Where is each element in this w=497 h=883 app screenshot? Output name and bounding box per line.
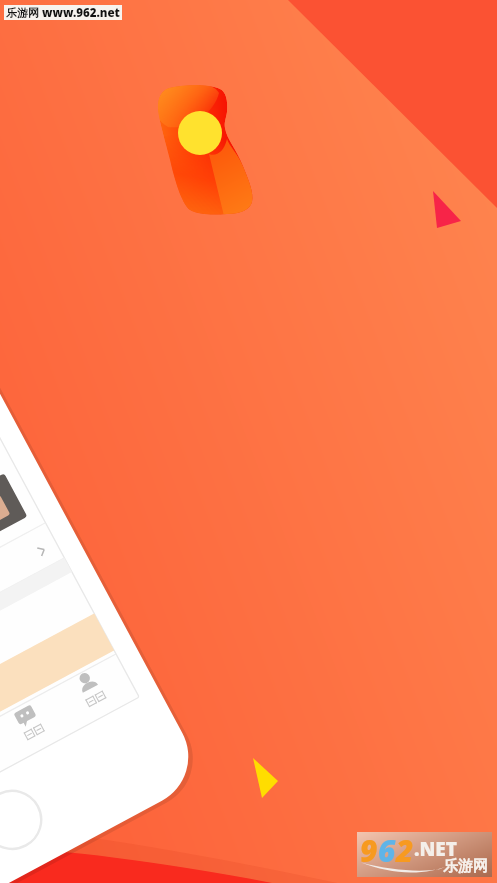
staticText: .NET [414, 836, 457, 862]
staticText: 9 [360, 830, 378, 871]
staticText: www.962.net [39, 5, 120, 20]
staticText: 2 [396, 830, 414, 871]
button[interactable]: Watermark 962.net [4, 5, 122, 20]
staticText: 乐游网 [443, 857, 488, 876]
button[interactable]: Watermark 962.net [0, 0, 497, 883]
staticText: 乐游网 [6, 6, 39, 20]
staticText: 6 [378, 830, 396, 871]
button[interactable]: Watermark 962.NET [357, 832, 492, 877]
